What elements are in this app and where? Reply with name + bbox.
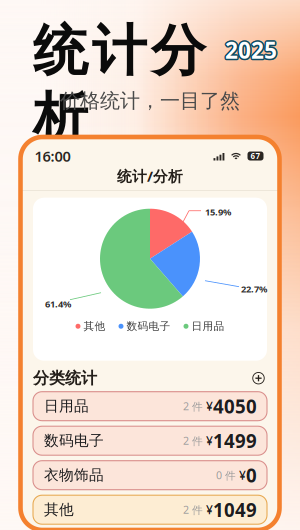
button[interactable]: 日用品 [33,392,267,421]
staticText: ¥ [203,398,213,414]
button[interactable]: 衣物饰品 [33,461,267,490]
staticText: 2 件 [183,399,203,413]
staticText: 1499 [213,428,257,453]
staticText: 61.4% [45,298,71,310]
staticText: 67 [250,151,260,161]
staticText: 0 件 [216,468,236,482]
staticText: ¥ [203,502,213,518]
staticText: 1049 [213,497,257,522]
button[interactable]: 数码电子 [33,426,267,455]
staticText: 统计分析 [33,17,206,152]
staticText: 数码电子 [44,432,104,450]
staticText: 日用品 [44,397,89,415]
staticText: 其他 [44,501,74,519]
staticText: 2025 [224,36,276,66]
button[interactable]: 其他 [33,495,267,524]
staticText: 其他 [83,320,105,333]
staticText: 2 件 [183,434,203,448]
staticText: 2025 [226,36,278,66]
staticText: 2025 [223,35,275,65]
button[interactable]: Add category [250,370,267,387]
staticText: 15.9% [205,206,231,218]
staticText: 2025 [226,34,278,64]
staticText: ¥ [203,433,213,449]
staticText: 衣物饰品 [44,466,104,484]
staticText: 数码电子 [126,320,170,333]
staticText: 2025 [225,33,277,64]
staticText: 价格统计，一目了然 [60,88,240,113]
staticText: 2025 [225,35,277,65]
staticText: 22.7% [241,283,267,295]
staticText: 2025 [224,34,276,64]
staticText: 统计/分析 [117,166,183,186]
staticText: 分类统计 [33,368,97,388]
staticText: 2025 [226,35,278,65]
staticText: 16:00 [34,146,70,166]
staticText: 2025 [225,36,277,67]
staticText: 日用品 [191,320,224,333]
staticText: 2 件 [183,503,203,517]
staticText: ¥ [236,467,246,483]
staticText: 4050 [213,394,257,419]
staticText: 0 [246,463,257,488]
